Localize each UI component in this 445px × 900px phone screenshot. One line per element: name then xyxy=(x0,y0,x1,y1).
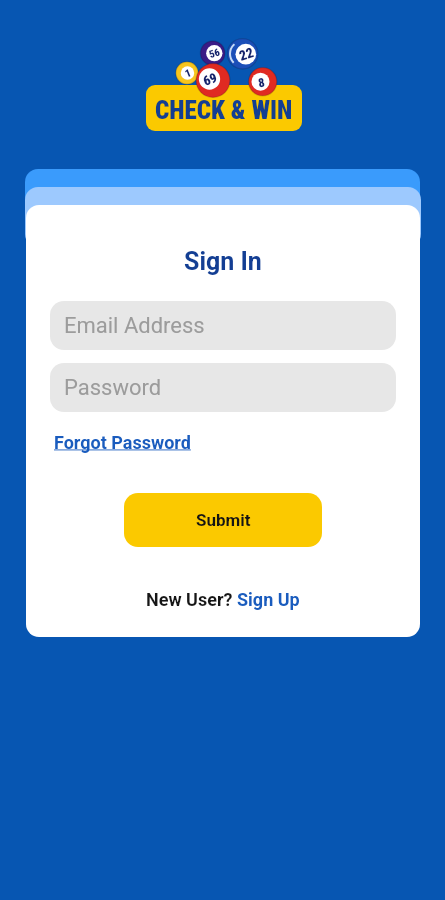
button[interactable]: Submit xyxy=(124,493,322,547)
button[interactable]: Email Address xyxy=(50,301,396,350)
staticText: Submit xyxy=(196,510,251,530)
staticText: Sign In xyxy=(184,247,262,276)
staticText: CHECK & WIN xyxy=(155,96,293,125)
button[interactable]: Sign Up xyxy=(237,589,300,610)
staticText: 69 xyxy=(201,69,219,89)
button[interactable]: Password xyxy=(50,363,396,412)
button[interactable]: Forgot Password xyxy=(54,432,191,453)
staticText: 1 xyxy=(183,66,193,81)
staticText: 56 xyxy=(207,45,222,60)
staticText: New User? xyxy=(146,589,237,610)
staticText: 22 xyxy=(237,44,256,64)
staticText: 8 xyxy=(257,74,266,90)
staticText: Sign Up xyxy=(237,589,300,610)
staticText: Email Address xyxy=(64,313,205,339)
staticText: Password xyxy=(64,375,162,401)
staticText: Forgot Password xyxy=(54,432,191,453)
